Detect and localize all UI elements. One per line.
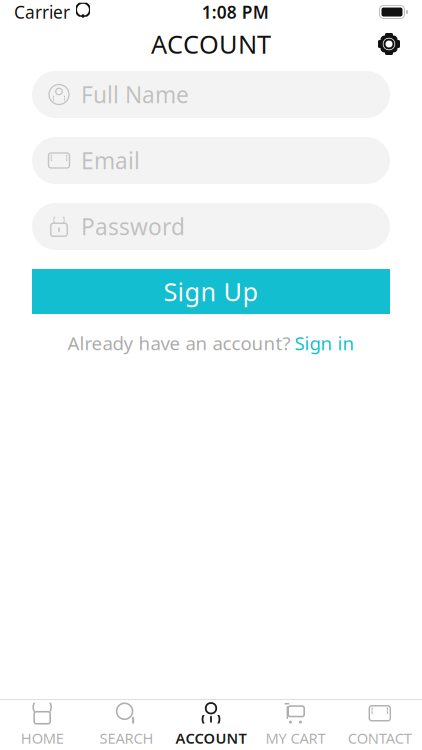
staticText: SEARCH [100, 728, 154, 748]
staticText: Sign in [294, 331, 354, 355]
button[interactable]: Full Name [32, 71, 390, 118]
staticText: ACCOUNT [151, 27, 271, 61]
staticText: Full Name [81, 79, 189, 109]
button[interactable]: Already have an account? [32, 333, 390, 353]
button[interactable]: Settings [367, 24, 411, 64]
staticText: Already have an account? [67, 331, 290, 355]
button[interactable]: CONTACT [338, 700, 422, 749]
button[interactable]: MY CART [253, 700, 338, 749]
staticText: Email [81, 145, 140, 175]
staticText: Password [81, 211, 185, 241]
button[interactable]: Email [32, 137, 390, 184]
button[interactable]: HOME [0, 700, 84, 749]
staticText: Carrier [14, 0, 70, 23]
button[interactable]: Password [32, 203, 390, 250]
staticText: ACCOUNT [175, 728, 246, 748]
staticText: MY CART [265, 728, 325, 748]
staticText: HOME [21, 728, 64, 748]
staticText: 1:08 PM [202, 0, 269, 23]
staticText: CONTACT [348, 728, 412, 748]
button[interactable]: ACCOUNT [169, 700, 253, 749]
button[interactable]: Sign Up [32, 269, 390, 314]
button[interactable]: SEARCH [84, 700, 169, 749]
staticText: Sign Up [163, 275, 258, 308]
